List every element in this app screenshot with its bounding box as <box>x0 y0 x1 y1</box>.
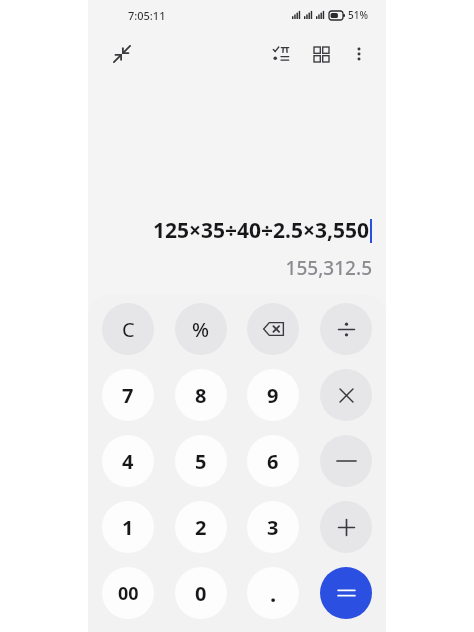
staticText: 3 <box>267 514 279 541</box>
staticText: 155,312.5 <box>285 255 372 281</box>
staticText: 00 <box>118 581 139 606</box>
staticText: % <box>192 316 210 343</box>
staticText: . <box>270 578 277 608</box>
staticText: 0 <box>195 580 207 607</box>
button[interactable]: % <box>175 303 227 355</box>
staticText: 8 <box>195 382 207 409</box>
staticText: C <box>122 316 135 343</box>
button[interactable]: Scientific mode <box>264 37 298 71</box>
button[interactable]: Multiply <box>320 369 372 421</box>
button[interactable]: 9 <box>247 369 299 421</box>
staticText: 9 <box>267 382 279 409</box>
button[interactable]: 1 <box>102 501 154 553</box>
staticText: 125×35÷40÷2.5×3,550 <box>152 216 369 245</box>
button[interactable]: 5 <box>175 435 227 487</box>
button[interactable]: Minus <box>320 435 372 487</box>
staticText: 5 <box>195 448 207 475</box>
button[interactable]: C <box>102 303 154 355</box>
button[interactable]: Converter <box>304 37 338 71</box>
staticText: 1 <box>122 514 134 541</box>
button[interactable]: 7 <box>102 369 154 421</box>
button[interactable]: 8 <box>175 369 227 421</box>
staticText: 2 <box>195 514 207 541</box>
button[interactable]: 3 <box>247 501 299 553</box>
staticText: 7:05:11 <box>128 8 166 23</box>
button[interactable]: . <box>247 567 299 619</box>
button[interactable]: Divide <box>320 303 372 355</box>
button[interactable]: Backspace <box>247 303 299 355</box>
button[interactable]: More options <box>342 37 376 71</box>
button[interactable]: 0 <box>175 567 227 619</box>
button[interactable]: 6 <box>247 435 299 487</box>
button[interactable]: Equals <box>320 567 372 619</box>
staticText: 6 <box>267 448 279 475</box>
button[interactable]: Collapse <box>104 36 140 72</box>
button[interactable]: 2 <box>175 501 227 553</box>
staticText: 4 <box>122 448 134 475</box>
button[interactable]: 4 <box>102 435 154 487</box>
staticText: 51% <box>348 8 368 22</box>
staticText: 7 <box>122 382 134 409</box>
button[interactable]: Plus <box>320 501 372 553</box>
button[interactable]: 00 <box>102 567 154 619</box>
